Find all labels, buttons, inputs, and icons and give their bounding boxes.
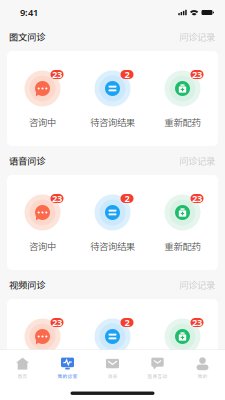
button[interactable]: 我的诊室 [45, 354, 90, 384]
button[interactable]: 问诊记录 [179, 278, 215, 291]
staticText: 问诊记录 [179, 278, 215, 291]
button[interactable]: 消息 [90, 354, 135, 384]
staticText: 2 [124, 192, 129, 205]
button[interactable]: 2 [77, 194, 147, 250]
staticText: 消息 [107, 373, 117, 380]
staticText: 待咨询结果 [90, 239, 135, 253]
staticText: 23 [52, 68, 62, 81]
staticText: 我的诊室 [57, 373, 77, 380]
staticText: 我的 [197, 373, 207, 380]
button[interactable]: 问诊记录 [179, 154, 215, 167]
button[interactable]: 医患互动 [135, 354, 180, 384]
button[interactable]: 23 [7, 70, 77, 126]
staticText: 2 [124, 68, 129, 81]
staticText: 重新配药 [164, 239, 200, 253]
staticText: 图文问诊 [9, 30, 45, 43]
staticText: 23 [192, 192, 202, 205]
button[interactable]: 23 [147, 194, 217, 250]
staticText: 23 [52, 192, 62, 205]
staticText: 语音问诊 [9, 154, 45, 167]
button[interactable]: 23 [147, 70, 217, 126]
staticText: 23 [192, 316, 202, 329]
button[interactable]: 23 [7, 318, 77, 374]
staticText: 咨询中 [29, 239, 56, 253]
button[interactable]: 2 [77, 318, 147, 374]
staticText: 咨询中 [29, 115, 56, 129]
staticText: 问诊记录 [179, 30, 215, 43]
staticText: 医患互动 [147, 373, 167, 380]
button[interactable]: 2 [77, 70, 147, 126]
staticText: 23 [192, 68, 202, 81]
button[interactable]: 首页 [0, 354, 45, 384]
button[interactable]: 23 [147, 318, 217, 374]
staticText: 9:41 [20, 6, 38, 19]
button[interactable]: 我的 [180, 354, 225, 384]
staticText: 重新配药 [164, 115, 200, 129]
staticText: 问诊记录 [179, 154, 215, 167]
staticText: 23 [52, 316, 62, 329]
button[interactable]: 23 [7, 194, 77, 250]
staticText: 首页 [17, 373, 27, 380]
button[interactable]: 问诊记录 [179, 30, 215, 43]
staticText: 待咨询结果 [90, 363, 135, 377]
staticText: 视频问诊 [9, 278, 45, 291]
staticText: 重新配药 [164, 363, 200, 377]
staticText: 待咨询结果 [90, 115, 135, 129]
staticText: 2 [124, 316, 129, 329]
